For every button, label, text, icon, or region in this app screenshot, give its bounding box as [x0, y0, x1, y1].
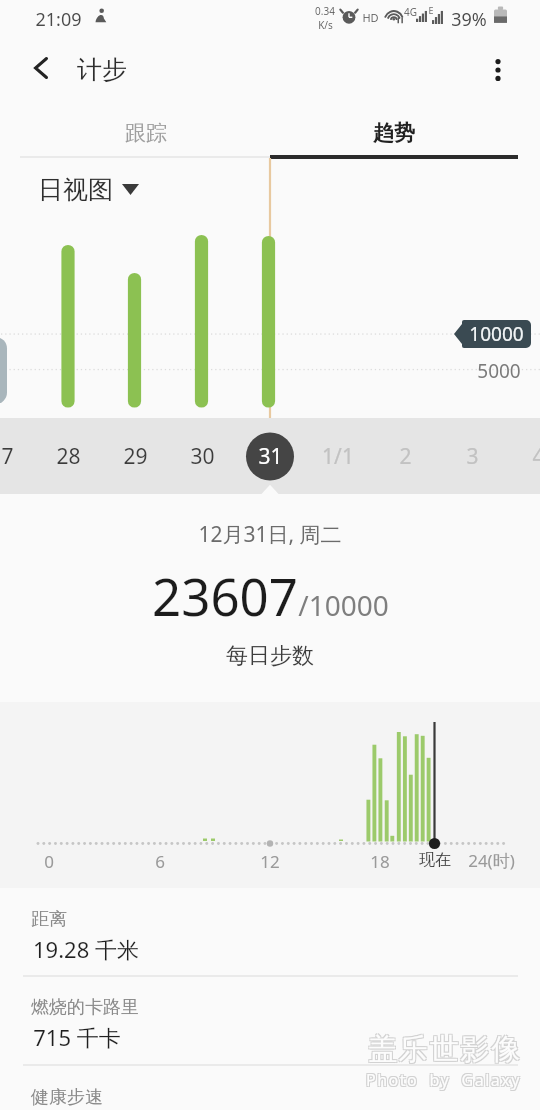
staticText: 0: [44, 850, 54, 873]
staticText: /10000: [298, 586, 389, 624]
staticText: Photo by Galaxy: [366, 1069, 521, 1091]
button[interactable]: 燃烧的卡路里: [0, 976, 540, 1065]
staticText: 1/1: [322, 442, 354, 471]
staticText: 跟踪: [125, 120, 167, 146]
staticText: 39%: [451, 7, 487, 32]
staticText: 盖乐世影像: [366, 1030, 520, 1067]
staticText: 2: [399, 442, 412, 471]
staticText: 盖乐世影像: [366, 1032, 520, 1069]
staticText: 现在: [419, 850, 451, 870]
button[interactable]: 4: [505, 418, 540, 494]
staticText: 燃烧的卡路里: [31, 996, 139, 1019]
staticText: 21:09: [35, 7, 82, 32]
button[interactable]: 3: [439, 418, 505, 494]
button[interactable]: 28: [35, 418, 101, 494]
button[interactable]: More options: [470, 42, 526, 98]
staticText: 盖乐世影像: [368, 1030, 522, 1067]
staticText: 计步: [77, 54, 127, 85]
staticText: Photo by Galaxy: [367, 1068, 522, 1090]
staticText: 5000: [477, 358, 521, 384]
button[interactable]: 30: [169, 418, 235, 494]
staticText: 健康步速: [31, 1086, 103, 1109]
button[interactable]: 29: [102, 418, 168, 494]
staticText: Photo by Galaxy: [365, 1070, 520, 1092]
button[interactable]: 日视图: [38, 170, 139, 209]
staticText: 距离: [31, 908, 67, 931]
staticText: 盖乐世影像: [367, 1031, 521, 1068]
button[interactable]: 趋势: [270, 104, 518, 162]
button[interactable]: 31: [237, 418, 303, 494]
button[interactable]: 1/1: [305, 418, 371, 494]
staticText: 4: [532, 442, 540, 471]
staticText: 盖乐世影像: [368, 1032, 522, 1069]
button[interactable]: 7: [0, 418, 40, 494]
button[interactable]: Back: [13, 40, 69, 96]
staticText: Photo by Galaxy: [367, 1070, 522, 1092]
button[interactable]: 2: [372, 418, 438, 494]
staticText: 29: [123, 442, 148, 471]
staticText: 12: [260, 850, 280, 873]
staticText: 24(时): [468, 849, 515, 872]
button[interactable]: 跟踪: [22, 104, 270, 162]
staticText: 10000: [469, 321, 524, 347]
staticText: 19.28 千米: [33, 934, 139, 964]
staticText: 日视图: [38, 174, 113, 205]
button[interactable]: 距离: [0, 888, 540, 976]
staticText: 每日步数: [226, 642, 314, 670]
staticText: 31: [258, 442, 283, 471]
button[interactable]: 健康步速: [0, 1065, 540, 1110]
staticText: 3: [466, 442, 479, 471]
staticText: K/s: [318, 18, 333, 32]
staticText: 18: [370, 850, 390, 873]
staticText: 715 千卡: [33, 1022, 121, 1052]
staticText: HD: [362, 10, 379, 25]
staticText: Photo by Galaxy: [365, 1068, 520, 1090]
staticText: 4G: [404, 5, 417, 19]
staticText: 6: [155, 850, 165, 873]
staticText: 28: [56, 442, 81, 471]
staticText: 12月31日, 周二: [198, 520, 342, 549]
staticText: 23607: [152, 561, 298, 630]
staticText: 7: [1, 442, 14, 471]
staticText: 30: [190, 442, 215, 471]
staticText: 趋势: [373, 120, 415, 146]
staticText: E: [428, 4, 434, 16]
staticText: 0.34: [315, 4, 335, 18]
